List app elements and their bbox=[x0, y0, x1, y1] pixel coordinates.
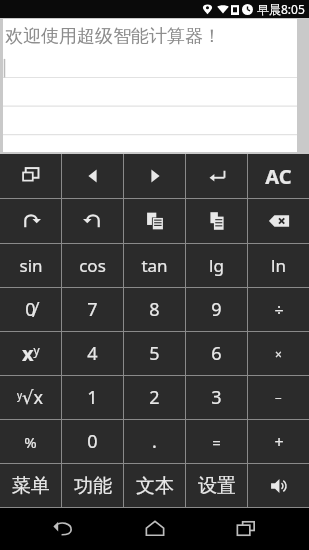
staticText: 9 bbox=[211, 297, 222, 322]
button[interactable]: Paste bbox=[186, 199, 247, 243]
button[interactable]: Backspace bbox=[248, 199, 309, 243]
staticText: lg bbox=[209, 254, 224, 277]
button[interactable]: cos bbox=[62, 244, 123, 287]
button[interactable]: tan bbox=[124, 244, 185, 287]
button[interactable]: Enter bbox=[186, 154, 247, 198]
button[interactable]: % bbox=[0, 420, 61, 463]
button[interactable]: Home bbox=[127, 508, 183, 550]
staticText: cos bbox=[79, 254, 106, 277]
staticText: 3 bbox=[211, 385, 222, 410]
button[interactable]: Right bbox=[124, 154, 185, 198]
button[interactable]: Sound bbox=[248, 464, 309, 507]
button[interactable]: 3 bbox=[186, 376, 247, 419]
button[interactable]: + bbox=[248, 420, 309, 463]
button[interactable]: − bbox=[248, 376, 309, 419]
button[interactable]: 8 bbox=[124, 288, 185, 331]
staticText: 7 bbox=[87, 297, 98, 322]
staticText: = bbox=[212, 432, 221, 452]
button[interactable]: 7 bbox=[62, 288, 123, 331]
button[interactable]: Recents bbox=[218, 508, 274, 550]
staticText: 功能 bbox=[74, 474, 112, 498]
button[interactable]: lg bbox=[186, 244, 247, 287]
staticText: 5 bbox=[149, 341, 160, 366]
staticText: xy bbox=[22, 340, 40, 367]
button[interactable]: = bbox=[186, 420, 247, 463]
staticText: AC bbox=[265, 163, 292, 190]
button[interactable]: 文本 bbox=[124, 464, 185, 507]
button[interactable]: 5 bbox=[124, 332, 185, 375]
button[interactable]: Windows bbox=[0, 154, 61, 198]
button[interactable]: 9 bbox=[186, 288, 247, 331]
button[interactable]: ÷ bbox=[248, 288, 309, 331]
staticText: 4 bbox=[87, 341, 98, 366]
button[interactable]: Copy bbox=[124, 199, 185, 243]
button[interactable]: 6 bbox=[186, 332, 247, 375]
button[interactable]: 设置 bbox=[186, 464, 247, 507]
staticText: 1 bbox=[87, 385, 98, 410]
staticText: 早晨8:05 bbox=[257, 1, 305, 17]
staticText: % bbox=[24, 432, 37, 452]
staticText: × bbox=[275, 346, 282, 362]
button[interactable]: × bbox=[248, 332, 309, 375]
staticText: y√x bbox=[17, 385, 44, 410]
staticText: ÷ bbox=[274, 299, 284, 321]
staticText: 菜单 bbox=[12, 474, 50, 498]
staticText: 欢迎使用超级智能计算器！ bbox=[5, 25, 221, 48]
staticText: tan bbox=[141, 254, 168, 277]
button[interactable]: 0 bbox=[62, 420, 123, 463]
staticText: sin bbox=[19, 254, 43, 277]
staticText: 文本 bbox=[136, 474, 174, 498]
staticText: 设置 bbox=[198, 474, 236, 498]
staticText: + bbox=[274, 431, 284, 453]
button[interactable]: 菜单 bbox=[0, 464, 61, 507]
button[interactable]: Undo bbox=[0, 199, 61, 243]
button[interactable]: xy bbox=[0, 332, 61, 375]
staticText: . bbox=[152, 429, 157, 454]
button[interactable]: 2 bbox=[124, 376, 185, 419]
staticText: 0̸ bbox=[25, 297, 36, 322]
staticText: − bbox=[275, 390, 282, 406]
staticText: 8 bbox=[149, 297, 160, 322]
button[interactable]: sin bbox=[0, 244, 61, 287]
button[interactable]: ln bbox=[248, 244, 309, 287]
staticText: 0 bbox=[87, 429, 98, 454]
button[interactable]: y√x bbox=[0, 376, 61, 419]
button[interactable]: Redo bbox=[62, 199, 123, 243]
button[interactable]: AC bbox=[248, 154, 309, 198]
button[interactable]: . bbox=[124, 420, 185, 463]
button[interactable]: Left bbox=[62, 154, 123, 198]
button[interactable]: 0̸ bbox=[0, 288, 61, 331]
staticText: ln bbox=[271, 254, 286, 277]
button[interactable]: 1 bbox=[62, 376, 123, 419]
staticText: 2 bbox=[149, 385, 160, 410]
button[interactable]: 4 bbox=[62, 332, 123, 375]
staticText: 6 bbox=[211, 341, 222, 366]
button[interactable]: Back bbox=[35, 508, 91, 550]
button[interactable]: 功能 bbox=[62, 464, 123, 507]
